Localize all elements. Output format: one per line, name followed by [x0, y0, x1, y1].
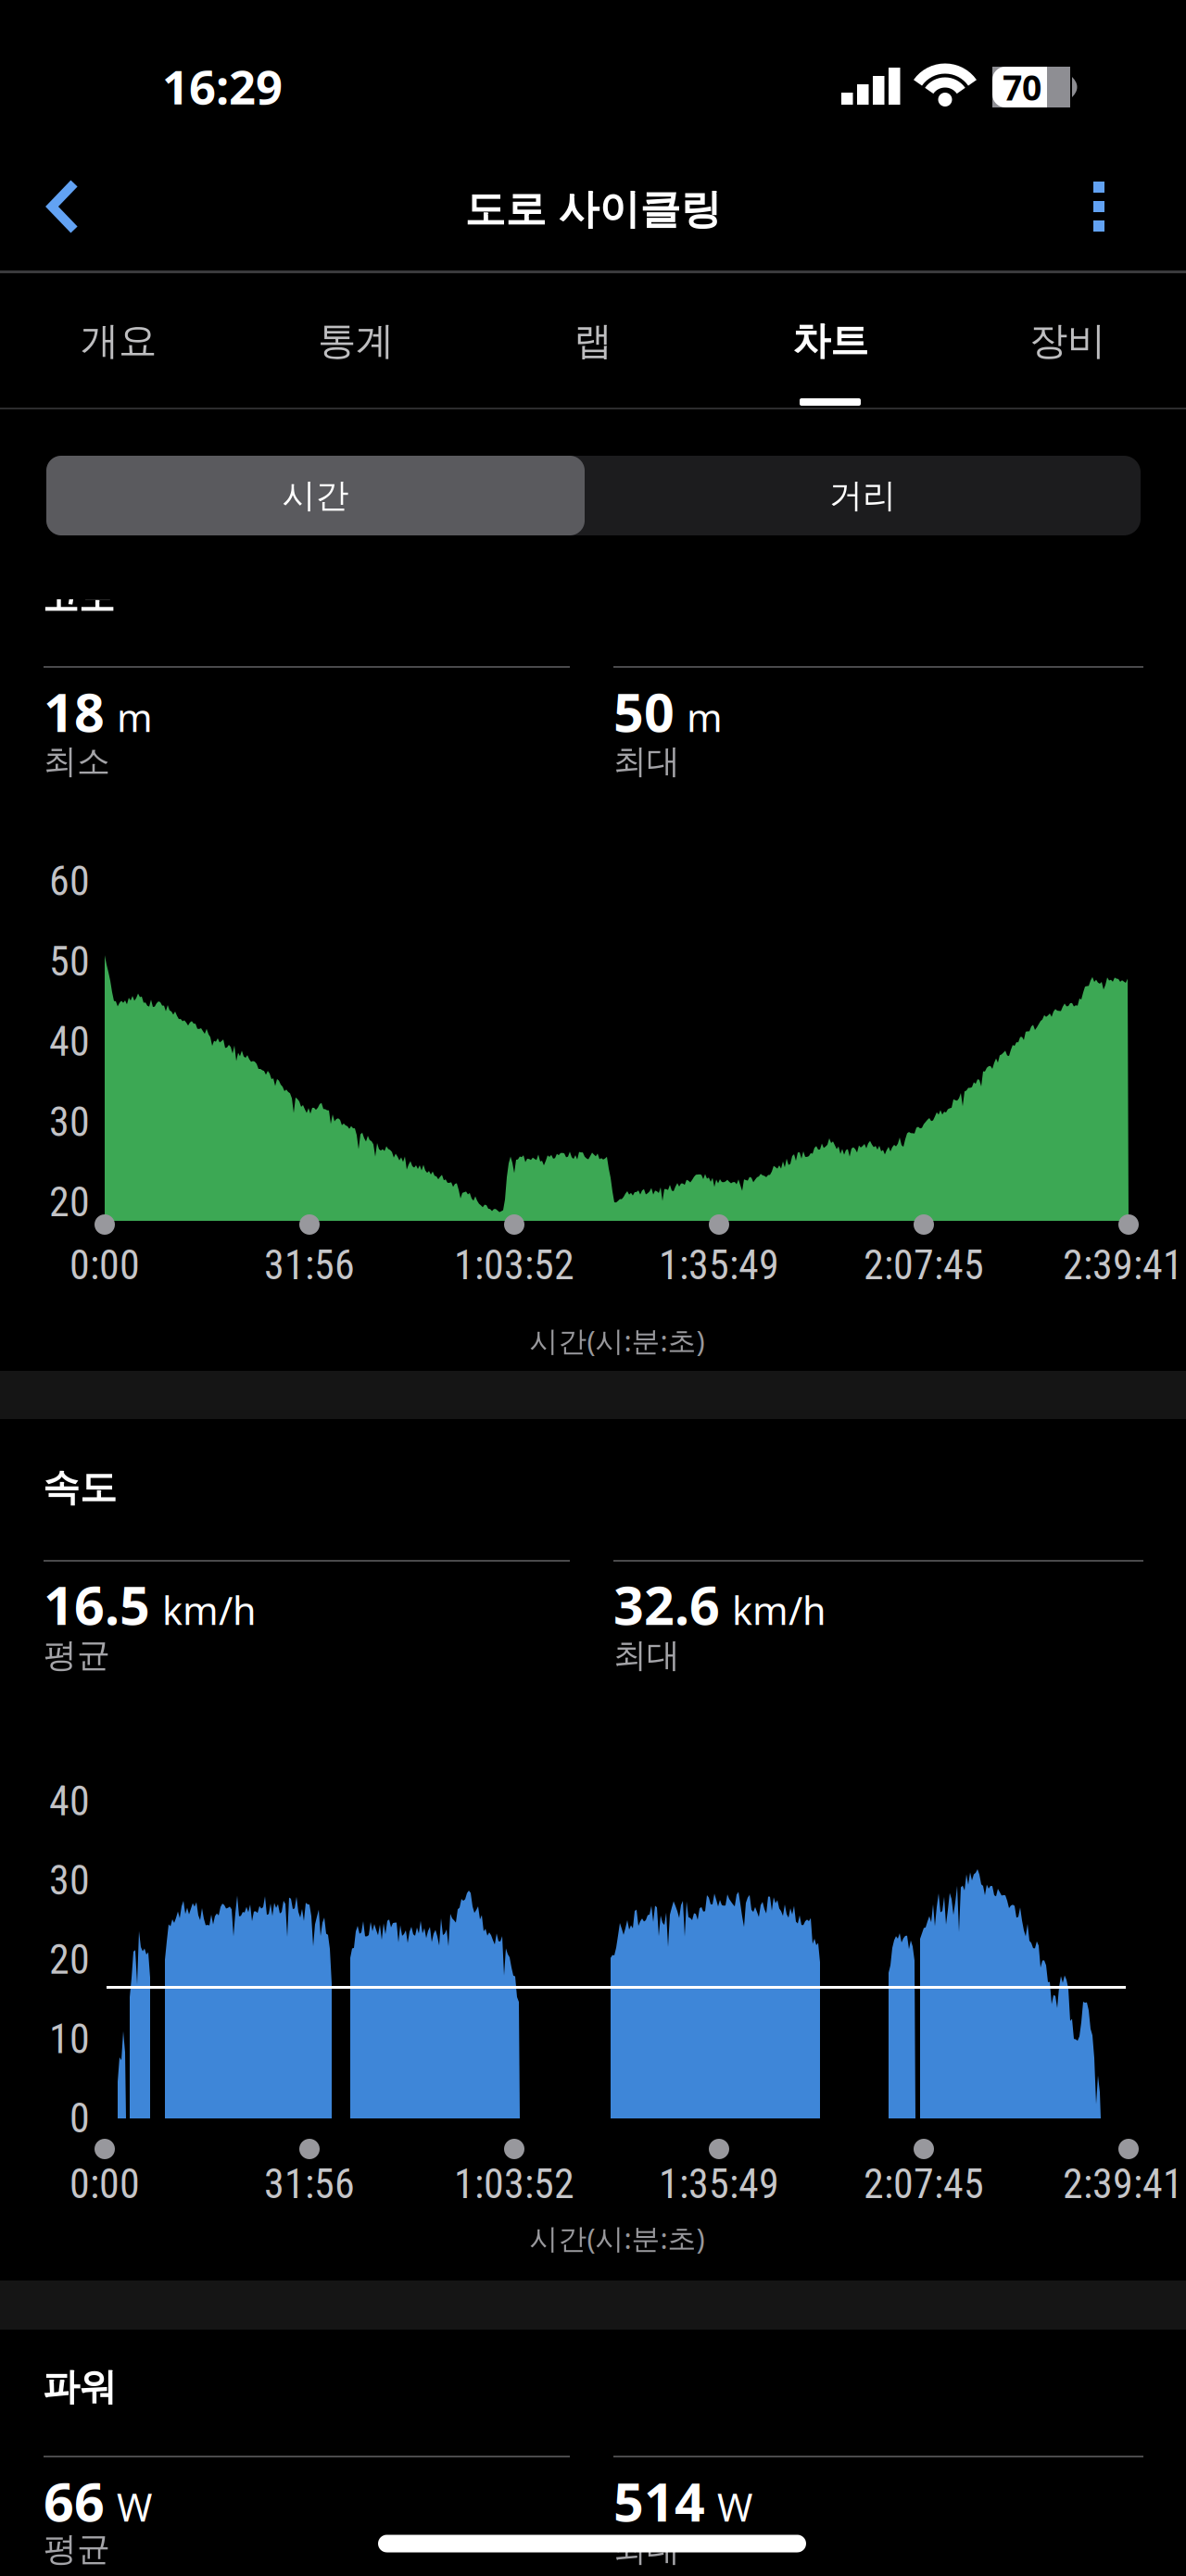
staticText: 고도 [43, 576, 115, 619]
button[interactable]: 통계 [237, 273, 474, 408]
staticText: 도로 사이클링 [465, 184, 721, 234]
staticText: 2:39:41 [1063, 2160, 1183, 2208]
staticText: 2:07:45 [864, 1241, 984, 1289]
staticText: 랩 [574, 317, 612, 364]
staticText: 0 [69, 2095, 90, 2142]
staticText: 속도 [43, 1465, 117, 1510]
staticText: km/h [732, 1585, 826, 1636]
staticText: 20 [49, 1179, 90, 1226]
staticText: 66 [44, 2466, 105, 2536]
staticText: 차트 [792, 317, 868, 364]
staticText: 1:35:49 [659, 1241, 779, 1289]
staticText: 31:56 [264, 2160, 355, 2208]
staticText: 18 [44, 676, 105, 747]
staticText: 최대 [613, 741, 680, 782]
staticText: 2:07:45 [864, 2160, 984, 2208]
staticText: 16.5 [44, 1569, 150, 1640]
staticText: 평균 [44, 2529, 110, 2570]
staticText: 50 [613, 676, 675, 747]
staticText: 32.6 [613, 1569, 720, 1640]
staticText: 40 [49, 1018, 90, 1066]
staticText: 1:03:52 [454, 2160, 574, 2208]
staticText: 시간(시:분:초) [530, 1321, 705, 1359]
staticText: 통계 [318, 317, 394, 364]
button[interactable]: 장비 [949, 273, 1186, 408]
staticText: 거리 [829, 475, 896, 516]
staticText: 최대 [613, 1635, 680, 1676]
staticText: 30 [49, 1857, 90, 1904]
staticText: 31:56 [264, 1241, 355, 1289]
staticText: 50 [49, 938, 90, 985]
staticText: m [117, 692, 153, 743]
staticText: W [117, 2481, 152, 2532]
button[interactable]: 차트 [712, 273, 949, 408]
staticText: 10 [49, 2015, 90, 2063]
staticText: 시간 [282, 475, 349, 516]
staticText: 평균 [44, 1635, 110, 1676]
staticText: 514 [613, 2466, 705, 2536]
staticText: 20 [49, 1936, 90, 1984]
button[interactable]: 거리 [585, 456, 1141, 535]
staticText: 0:00 [69, 1241, 140, 1289]
staticText: 16:29 [162, 55, 283, 117]
staticText: 시간(시:분:초) [530, 2219, 705, 2257]
staticText: 파워 [43, 2364, 117, 2410]
button[interactable]: More options [1062, 180, 1136, 241]
button[interactable]: 랩 [474, 273, 712, 408]
staticText: W [717, 2481, 752, 2532]
staticText: m [687, 692, 723, 743]
staticText: 2:39:41 [1063, 1241, 1183, 1289]
staticText: km/h [162, 1585, 257, 1636]
staticText: 1:03:52 [454, 1241, 574, 1289]
button[interactable]: Back [33, 170, 89, 244]
staticText: 장비 [1029, 317, 1105, 364]
button[interactable]: 개요 [0, 273, 237, 408]
staticText: 개요 [81, 317, 157, 364]
button[interactable]: 시간 [46, 456, 585, 535]
staticText: 최소 [44, 741, 110, 782]
staticText: 30 [49, 1098, 90, 1146]
staticText: 0:00 [69, 2160, 140, 2208]
staticText: 60 [49, 857, 90, 905]
staticText: 1:35:49 [659, 2160, 779, 2208]
staticText: 최대 [613, 2529, 680, 2570]
staticText: 40 [49, 1777, 90, 1825]
staticText: 70 [1003, 64, 1041, 110]
